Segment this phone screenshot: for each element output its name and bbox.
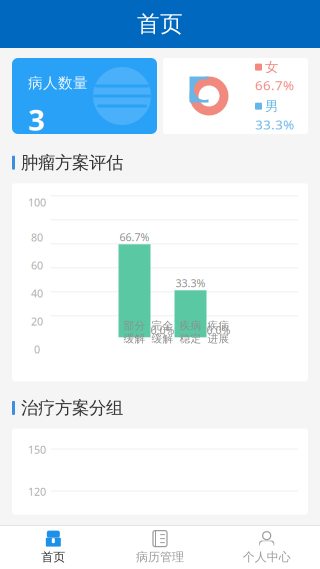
staticText: 66.7% [255, 76, 294, 94]
staticText: 男 [265, 98, 278, 114]
staticText: 0.0% [150, 323, 174, 337]
staticText: 60 [31, 258, 43, 272]
staticText: 150 [28, 442, 46, 457]
staticText: 33.3% [175, 276, 205, 290]
staticText: 病历管理 [136, 550, 184, 564]
staticText: 疾病进展 [207, 319, 229, 345]
staticText: 疾病稳定 [179, 319, 201, 345]
staticText: 100 [28, 526, 46, 541]
staticText: 女 [265, 59, 278, 75]
staticText: 40 [31, 286, 43, 300]
staticText: 3 [28, 100, 45, 139]
button[interactable]: 个人中心 [213, 525, 320, 569]
staticText: 20 [31, 314, 43, 328]
staticText: 治疗方案分组 [21, 397, 123, 419]
staticText: 120 [28, 484, 46, 499]
staticText: 0 [34, 342, 40, 356]
staticText: 完全缓解 [151, 319, 173, 345]
staticText: 病人数量 [28, 74, 88, 92]
button[interactable]: 病历管理 [107, 525, 213, 569]
staticText: 80 [31, 230, 43, 244]
staticText: 部分缓解 [123, 319, 145, 345]
staticText: 肿瘤方案评估 [21, 152, 123, 173]
staticText: 33.3% [255, 115, 294, 133]
staticText: 66.7% [119, 230, 149, 244]
button[interactable]: 病人数量 [12, 58, 157, 134]
staticText: 首页 [41, 550, 65, 564]
staticText: 0.0% [206, 323, 230, 337]
staticText: 个人中心 [243, 550, 291, 564]
staticText: 100 [28, 195, 46, 209]
button[interactable]: 首页 [0, 525, 107, 569]
staticText: 首页 [137, 10, 183, 38]
